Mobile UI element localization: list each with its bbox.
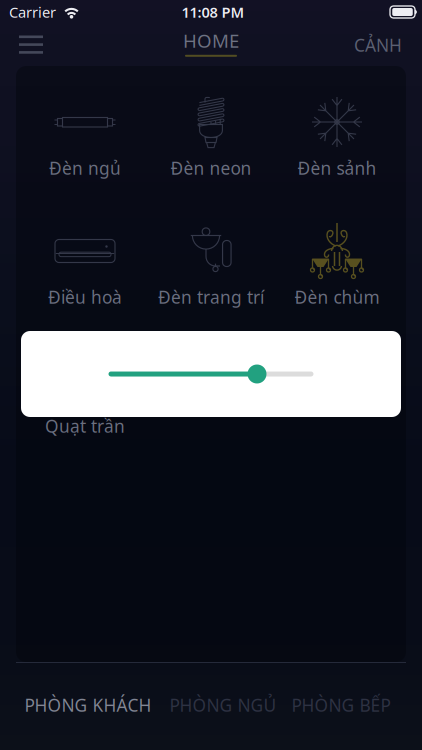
button[interactable]: Đèn chùm bbox=[274, 215, 400, 307]
staticText: Đèn trang trí bbox=[158, 285, 264, 308]
button[interactable]: PHÒNG BẾP bbox=[285, 683, 397, 727]
staticText: CẢNH bbox=[354, 33, 402, 56]
button[interactable]: CẢNH bbox=[334, 24, 422, 66]
button[interactable]: PHÒNG NGỦ bbox=[167, 683, 279, 727]
staticText: Đèn neon bbox=[170, 156, 251, 179]
staticText: Carrier bbox=[9, 2, 56, 22]
staticText: Quạt trần bbox=[45, 414, 125, 437]
staticText: 11:08 PM bbox=[181, 2, 244, 22]
staticText: Đèn ngủ bbox=[49, 156, 121, 179]
button[interactable]: Điều hoà bbox=[22, 215, 148, 307]
staticText: HOME bbox=[183, 28, 239, 53]
button[interactable]: Đèn neon bbox=[148, 86, 274, 178]
staticText: Đèn chùm bbox=[294, 285, 379, 308]
button[interactable]: Quạt trần bbox=[22, 344, 148, 436]
button[interactable]: Đèn ngủ bbox=[22, 86, 148, 178]
staticText: PHÒNG BẾP bbox=[291, 693, 390, 716]
button[interactable]: Đèn sảnh bbox=[274, 86, 400, 178]
button[interactable]: Menu bbox=[0, 24, 62, 66]
button[interactable]: HOME bbox=[165, 24, 257, 66]
staticText: PHÒNG KHÁCH bbox=[24, 693, 151, 716]
button[interactable]: PHÒNG KHÁCH bbox=[17, 683, 159, 727]
staticText: Điều hoà bbox=[48, 285, 122, 308]
staticText: PHÒNG NGỦ bbox=[169, 693, 276, 716]
button[interactable]: Đèn trang trí bbox=[148, 215, 274, 307]
staticText: Đèn sảnh bbox=[297, 156, 376, 179]
